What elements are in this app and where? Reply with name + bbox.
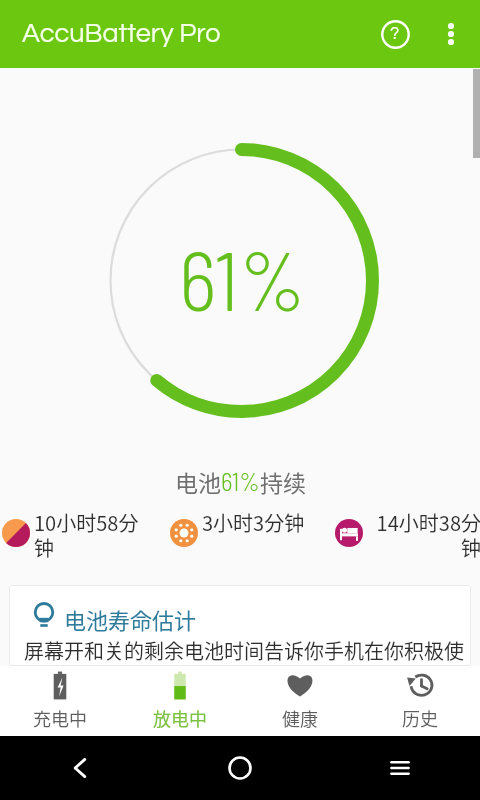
button[interactable]: More options bbox=[423, 6, 479, 62]
staticText: 充电中 bbox=[33, 705, 87, 731]
button[interactable]: 历史 bbox=[360, 666, 480, 736]
staticText: 10小时58分钟 bbox=[34, 508, 148, 560]
staticText: 屏幕开和关的剩余电池时间告诉你手机在你积极使用和待机时能持续多久。 bbox=[24, 636, 470, 666]
staticText: 61% bbox=[179, 229, 306, 327]
button[interactable]: 充电中 bbox=[0, 666, 120, 736]
button[interactable]: Help bbox=[367, 6, 423, 62]
staticText: 健康 bbox=[282, 705, 318, 731]
staticText: 历史 bbox=[402, 705, 438, 731]
button[interactable]: 健康 bbox=[240, 666, 360, 736]
button[interactable]: Back bbox=[0, 736, 160, 800]
staticText: ? bbox=[390, 24, 400, 43]
button[interactable]: Home bbox=[160, 736, 320, 800]
staticText: 3小时3分钟 bbox=[202, 508, 305, 537]
button[interactable]: 电池寿命估计 bbox=[9, 585, 471, 666]
button[interactable]: 放电中 bbox=[120, 666, 240, 736]
staticText: 61% bbox=[221, 466, 260, 496]
staticText: 放电中 bbox=[153, 705, 207, 731]
staticText: 14小时38分钟 bbox=[367, 508, 480, 560]
staticText: 电池寿命估计 bbox=[64, 603, 197, 633]
staticText: AccuBattery Pro bbox=[22, 20, 221, 48]
staticText: 电池 bbox=[175, 465, 221, 498]
button[interactable]: Recents bbox=[320, 736, 480, 800]
staticText: 持续 bbox=[260, 465, 306, 498]
